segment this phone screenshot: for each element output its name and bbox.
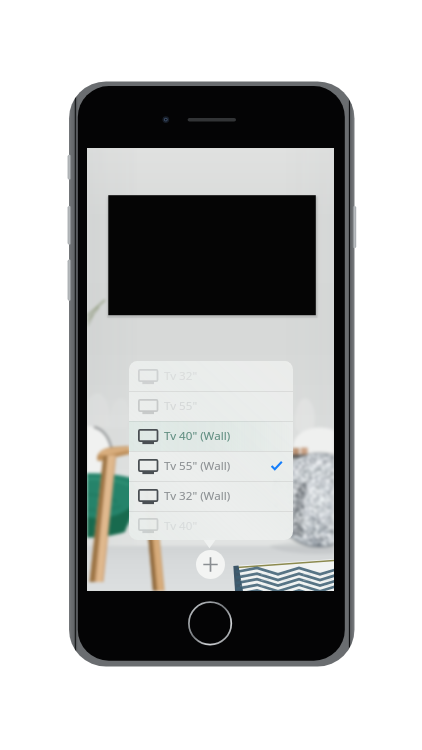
button[interactable]: Tv 55" (129, 391, 293, 421)
button[interactable]: Tv 55" (Wall) (129, 451, 293, 481)
button[interactable]: Tv 32" (Wall) (129, 481, 293, 511)
staticText: Tv 55" (Wall) (164, 458, 231, 474)
staticText: Tv 55" (164, 398, 198, 414)
staticText: Tv 32" (Wall) (164, 488, 231, 504)
button[interactable]: Tv 40" (Wall) (129, 421, 293, 451)
staticText: Tv 32" (164, 368, 198, 384)
button[interactable]: Tv 40" (129, 511, 293, 540)
button[interactable]: Tv 32" (129, 361, 293, 391)
staticText: Tv 40" (Wall) (164, 428, 231, 444)
button[interactable]: Add device (196, 550, 225, 579)
staticText: Tv 40" (164, 518, 198, 534)
